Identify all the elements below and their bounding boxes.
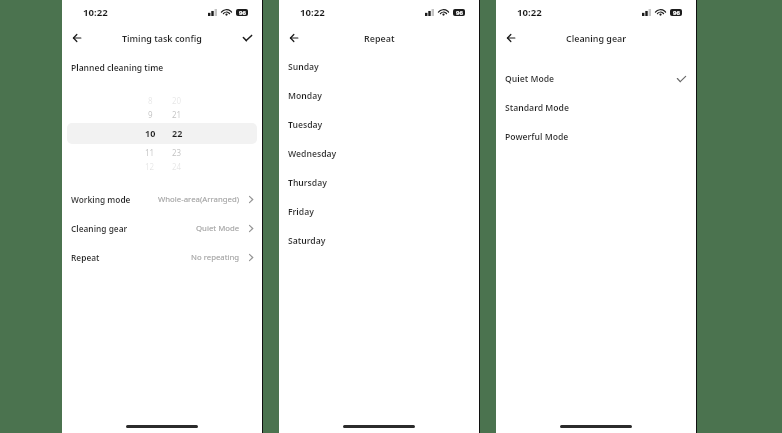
staticText: 11 (145, 147, 155, 158)
staticText: Powerful Mode (505, 131, 569, 143)
staticText: 10 (145, 127, 156, 139)
staticText: Whole-area(Arranged) (158, 194, 240, 205)
button[interactable]: Wednesday (279, 139, 479, 168)
staticText: No repeating (191, 252, 240, 263)
staticText: Timing task config (122, 32, 202, 44)
staticText: Repeat (364, 32, 395, 44)
staticText: 12 (145, 161, 155, 172)
staticText: 20 (172, 95, 182, 106)
button[interactable]: Cleaning gear (62, 214, 262, 243)
staticText: Standard Mode (505, 102, 569, 114)
button[interactable]: Quiet Mode (496, 64, 696, 93)
staticText: 96 (239, 9, 246, 16)
staticText: Friday (288, 206, 314, 218)
staticText: Monday (288, 90, 322, 102)
button[interactable]: Powerful Mode (496, 122, 696, 151)
staticText: 8 (148, 95, 153, 106)
staticText: 10:22 (517, 6, 542, 19)
staticText: Quiet Mode (196, 223, 240, 234)
staticText: Cleaning gear (71, 223, 128, 234)
staticText: 96 (673, 9, 680, 16)
button[interactable]: Repeat (62, 243, 262, 272)
button[interactable]: Saturday (279, 226, 479, 255)
staticText: Quiet Mode (505, 73, 555, 85)
button[interactable]: Sunday (279, 52, 479, 81)
button[interactable]: Monday (279, 81, 479, 110)
staticText: Saturday (288, 235, 326, 247)
staticText: Repeat (71, 252, 100, 263)
staticText: 9 (148, 109, 153, 120)
staticText: 22 (172, 127, 183, 139)
staticText: Working mode (71, 194, 131, 205)
button[interactable]: Back (66, 27, 88, 49)
staticText: Wednesday (288, 148, 337, 160)
button[interactable]: Standard Mode (496, 93, 696, 122)
staticText: Cleaning gear (566, 32, 627, 44)
staticText: 23 (172, 147, 182, 158)
staticText: Thursday (288, 177, 327, 189)
button[interactable]: Tuesday (279, 110, 479, 139)
staticText: Tuesday (288, 119, 323, 131)
staticText: 10:22 (300, 6, 325, 19)
staticText: Planned cleaning time (71, 62, 164, 74)
button[interactable]: Friday (279, 197, 479, 226)
button[interactable]: Confirm (236, 27, 258, 49)
button[interactable]: Thursday (279, 168, 479, 197)
staticText: 10:22 (83, 6, 108, 19)
button[interactable]: Working mode (62, 185, 262, 214)
staticText: Sunday (288, 61, 319, 73)
staticText: 96 (456, 9, 463, 16)
button[interactable]: Back (283, 27, 305, 49)
staticText: 21 (172, 109, 182, 120)
staticText: 24 (172, 161, 182, 172)
button[interactable]: Back (500, 27, 522, 49)
